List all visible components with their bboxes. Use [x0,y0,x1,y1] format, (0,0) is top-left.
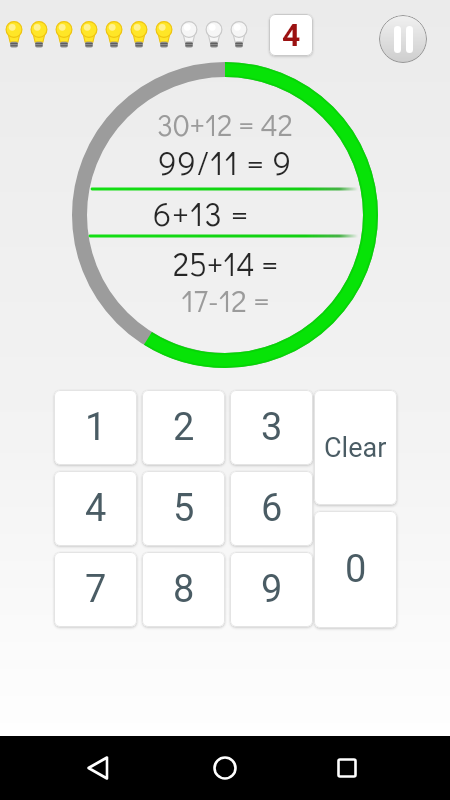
button[interactable]: 2 [142,390,225,465]
button[interactable] [323,744,371,792]
staticText: 2 [173,405,195,450]
button[interactable]: 4 [54,471,137,546]
staticText: 25+14 = [173,243,278,285]
staticText: 1 [85,405,107,450]
staticText: 4 [85,486,107,531]
staticText: 3 [261,405,283,450]
button[interactable]: 9 [230,552,313,627]
button[interactable] [201,744,249,792]
staticText: 30+12 = 42 [157,105,293,144]
staticText: 6+13 = [153,191,249,234]
staticText: 8 [173,567,195,612]
staticText: 6 [261,486,283,531]
staticText: Clear [324,432,387,464]
staticText: 17-12 = [181,280,270,321]
staticText: 7 [85,567,107,612]
staticText: 4 [282,16,301,54]
staticText: 5 [173,486,195,531]
button[interactable]: Clear [314,390,397,505]
staticText: 0 [345,547,367,592]
staticText: 99/11 = 9 [158,140,292,183]
button[interactable]: 5 [142,471,225,546]
button[interactable]: 6 [230,471,313,546]
button[interactable] [379,15,427,63]
staticText: 9 [261,567,283,612]
button[interactable]: 1 [54,390,137,465]
button[interactable]: 0 [314,511,397,628]
button[interactable] [74,744,122,792]
button[interactable]: 8 [142,552,225,627]
button[interactable]: 3 [230,390,313,465]
button[interactable]: 7 [54,552,137,627]
